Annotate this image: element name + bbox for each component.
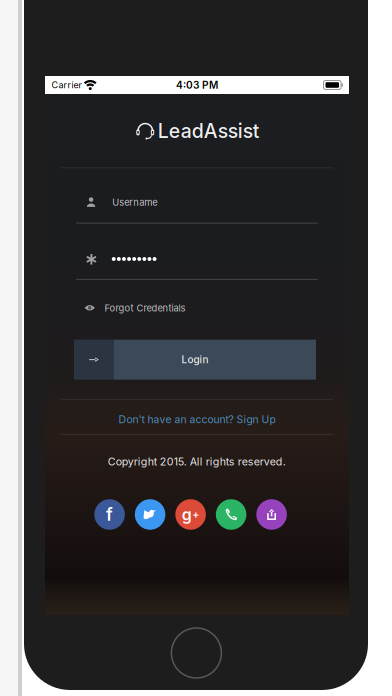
button[interactable]: Login bbox=[74, 340, 316, 380]
staticText: 4:03 PM bbox=[176, 79, 218, 91]
staticText: Forgot Credentials bbox=[105, 302, 186, 314]
staticText: + bbox=[192, 508, 199, 521]
staticText: Username bbox=[112, 197, 157, 208]
button[interactable]: Share bbox=[256, 499, 287, 530]
staticText: Don't have an account? Sign Up bbox=[118, 413, 275, 426]
button[interactable]: Facebook bbox=[94, 499, 125, 530]
button[interactable]: Forgot Credentials bbox=[45, 299, 277, 317]
button[interactable]: Twitter bbox=[135, 499, 165, 530]
button[interactable]: Google Plus bbox=[175, 499, 206, 530]
staticText: Login bbox=[181, 354, 208, 366]
button[interactable]: Call bbox=[216, 499, 246, 530]
staticText: Copyright 2015. All rights reserved. bbox=[108, 455, 286, 468]
staticText: f bbox=[106, 504, 113, 525]
staticText: LeadAssist bbox=[158, 119, 260, 143]
button[interactable]: Don't have an account? Sign Up bbox=[97, 411, 297, 428]
staticText: Carrier bbox=[51, 79, 81, 90]
staticText: g bbox=[182, 505, 192, 524]
